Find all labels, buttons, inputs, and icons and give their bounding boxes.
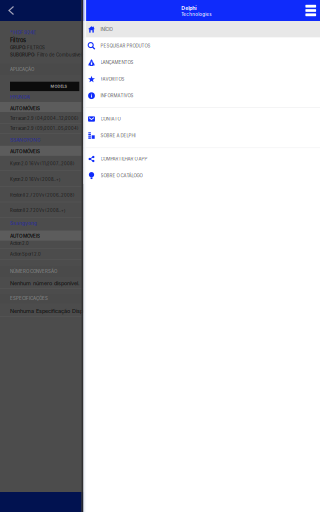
- staticText: FAVORITOS: [100, 76, 124, 82]
- staticText: SOBRE A DELPHI: [100, 133, 135, 138]
- staticText: FILTROS: [26, 45, 45, 50]
- button[interactable]: Menu: [297, 2, 320, 19]
- staticText: Filtros: [10, 37, 26, 44]
- staticText: Rexton II 2.7 20Vv (2008...+): [10, 208, 66, 213]
- staticText: CONTATO: [100, 116, 120, 122]
- staticText: Delphi: [181, 5, 196, 11]
- button[interactable]: COMPARTILHAR O APP: [83, 151, 320, 167]
- staticText: Action Sport 2.0: [10, 252, 41, 257]
- staticText: GRUPO:: [10, 45, 26, 50]
- staticText: Kyron 2.0 16Vv (2008...+): [10, 177, 61, 182]
- button[interactable]: PESQUISAR PRODUTOS: [83, 38, 320, 54]
- staticText: AUTOMÓVEIS: [10, 106, 40, 111]
- staticText: NÚMERO CONVERSÃO: [10, 269, 57, 274]
- staticText: AUTOMÓVEIS: [10, 149, 40, 154]
- staticText: *HDF 924E: [10, 30, 36, 35]
- staticText: Filtro de Combustível: [35, 52, 82, 57]
- staticText: AUTOMÓVEIS: [10, 233, 40, 239]
- staticText: Rexton II 2.7 20Vv (2006...2008): [10, 193, 75, 198]
- button[interactable]: SOBRE O CATÁLOGO: [83, 167, 320, 184]
- staticText: INFORMATIVOS: [100, 93, 133, 98]
- button[interactable]: SOBRE A DELPHI: [83, 127, 320, 144]
- staticText: ESPECIFICAÇÕES: [10, 296, 48, 301]
- staticText: Terracan 2.9 (04/2004...12/2006): [10, 116, 79, 121]
- button[interactable]: INFORMATIVOS: [83, 87, 320, 104]
- staticText: Action 2.0: [10, 241, 29, 246]
- staticText: Kyron 2.0 16Vv (11/2007...2008): [10, 161, 75, 166]
- staticText: Ssangyong: [10, 221, 37, 226]
- button[interactable]: LANÇAMENTOS: [83, 54, 320, 71]
- staticText: PESQUISAR PRODUTOS: [100, 43, 150, 48]
- staticText: COMPARTILHAR O APP: [100, 156, 147, 162]
- staticText: APLICAÇÃO: [10, 67, 34, 72]
- staticText: LANÇAMENTOS: [100, 60, 133, 65]
- staticText: Nenhuma Especificação Disponível: [10, 308, 97, 314]
- staticText: INÍCIO: [100, 27, 112, 32]
- staticText: SUBGRUPO:: [10, 52, 35, 57]
- staticText: HYUNDAI: [10, 94, 30, 100]
- staticText: Technologies: [181, 12, 211, 17]
- staticText: Terracan 2.9 (09/2001...05/2004): [10, 126, 79, 131]
- staticText: Nenhum número disponível.: [10, 280, 80, 286]
- staticText: SSANGYONG: [10, 137, 40, 143]
- button[interactable]: CONTATO: [83, 111, 320, 127]
- button[interactable]: INÍCIO: [83, 21, 320, 38]
- staticText: SOBRE O CATÁLOGO: [100, 173, 142, 178]
- staticText: MODELS: [50, 84, 67, 89]
- button[interactable]: FAVORITOS: [83, 71, 320, 87]
